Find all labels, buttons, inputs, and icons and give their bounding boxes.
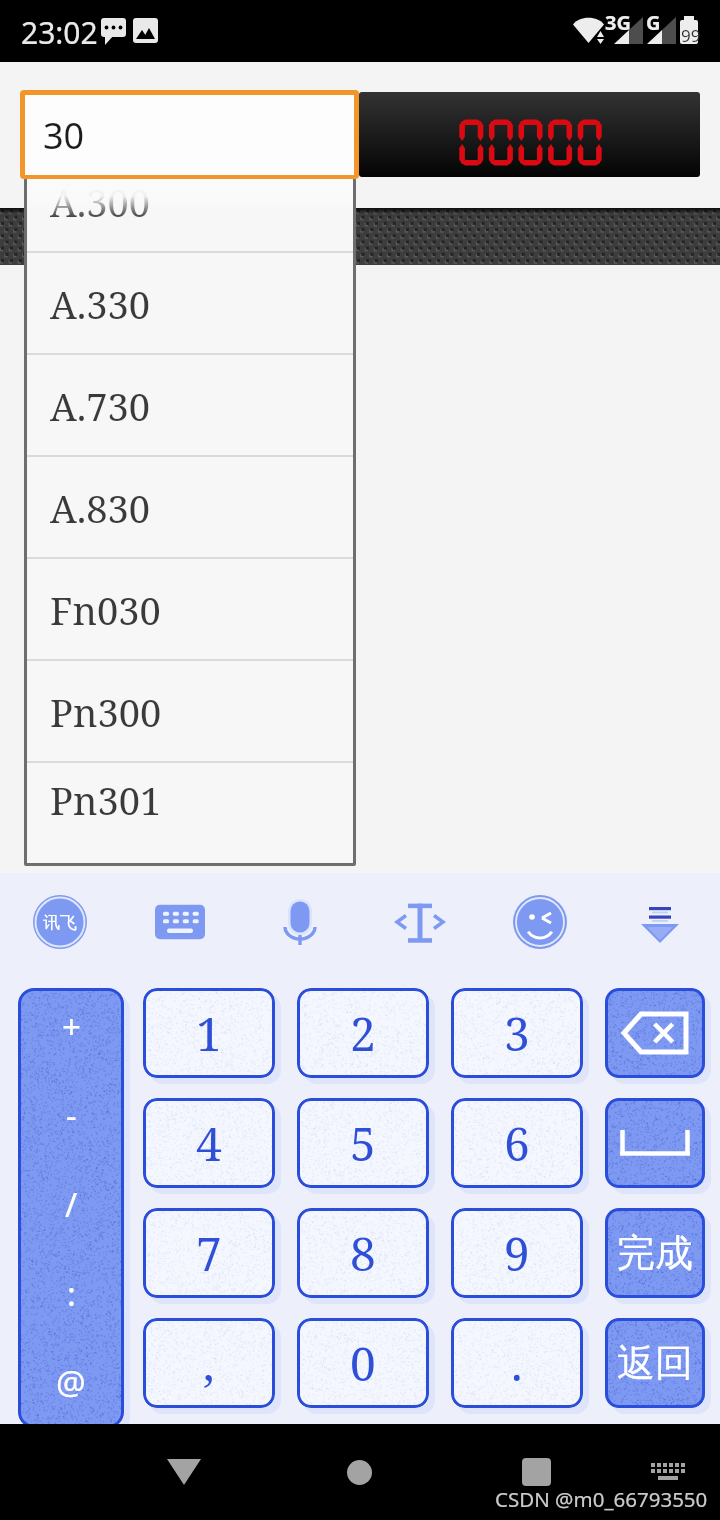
button[interactable]: 9	[451, 1208, 583, 1298]
staticText: Fn030	[50, 584, 161, 636]
button[interactable]: Pn301	[27, 763, 353, 836]
staticText: 完成	[617, 1229, 693, 1277]
staticText: /	[65, 1182, 78, 1227]
button[interactable]: 4	[143, 1098, 275, 1188]
staticText: 返回	[617, 1339, 693, 1387]
button[interactable]: Back	[144, 1438, 224, 1506]
button[interactable]: Pn300	[27, 661, 353, 763]
staticText: 1	[196, 1002, 222, 1065]
button[interactable]: Switch keyboard	[636, 1438, 700, 1506]
staticText: A.830	[50, 482, 151, 534]
button[interactable]: 返回	[605, 1318, 705, 1408]
button[interactable]: Input method	[16, 884, 104, 960]
button[interactable]: A.730	[27, 355, 353, 457]
button[interactable]: +	[18, 988, 124, 1428]
staticText: .	[511, 1332, 523, 1395]
staticText: 4	[196, 1112, 222, 1175]
button[interactable]: 7	[143, 1208, 275, 1298]
button[interactable]: 0	[297, 1318, 429, 1408]
button[interactable]: ,	[143, 1318, 275, 1408]
button[interactable]: A.300	[27, 178, 353, 253]
staticText: 5	[350, 1112, 376, 1175]
staticText: -	[66, 1093, 77, 1138]
staticText: Pn301	[50, 774, 162, 826]
staticText: ,	[203, 1332, 215, 1395]
button[interactable]: 8	[297, 1208, 429, 1298]
button[interactable]: Home	[319, 1438, 399, 1506]
button[interactable]: Emoji	[496, 884, 584, 960]
staticText: 99	[681, 24, 701, 47]
staticText: 23:02	[21, 12, 98, 53]
button[interactable]: Voice input	[256, 884, 344, 960]
staticText: 30	[43, 111, 85, 160]
button[interactable]: A.330	[27, 253, 353, 355]
button[interactable]: 30	[25, 95, 354, 175]
staticText: CSDN @m0_66793550	[495, 1485, 708, 1513]
staticText: A.730	[50, 380, 151, 432]
button[interactable]: Recents	[496, 1438, 576, 1506]
staticText: 讯飞	[43, 912, 77, 933]
other: Space	[620, 1130, 690, 1156]
button[interactable]: 完成	[605, 1208, 705, 1298]
staticText: 0	[350, 1332, 376, 1395]
button[interactable]: 1	[143, 988, 275, 1078]
staticText: 2	[350, 1002, 376, 1065]
staticText: 8	[350, 1222, 376, 1285]
button[interactable]: Move cursor	[376, 884, 464, 960]
button[interactable]: 5	[297, 1098, 429, 1188]
button[interactable]: 6	[451, 1098, 583, 1188]
staticText: 6	[504, 1112, 530, 1175]
other: Backspace	[619, 1009, 691, 1057]
staticText: @	[56, 1360, 86, 1405]
staticText: A.330	[50, 278, 151, 330]
button[interactable]: Space	[605, 1098, 705, 1188]
button[interactable]: Backspace	[605, 988, 705, 1078]
button[interactable]: A.830	[27, 457, 353, 559]
staticText: Pn300	[50, 686, 162, 738]
staticText: +	[62, 1004, 81, 1049]
button[interactable]: Fn030	[27, 559, 353, 661]
staticText: 3G	[605, 9, 631, 36]
button[interactable]: 3	[451, 988, 583, 1078]
staticText: :	[67, 1271, 76, 1316]
staticText: A.300	[50, 178, 151, 228]
staticText: 3	[504, 1002, 530, 1065]
staticText: G	[646, 9, 661, 36]
button[interactable]: Keyboard layout	[136, 884, 224, 960]
button[interactable]: .	[451, 1318, 583, 1408]
staticText: 7	[196, 1222, 222, 1285]
staticText: 9	[504, 1222, 530, 1285]
button[interactable]: Hide keyboard	[616, 884, 704, 960]
button[interactable]: 2	[297, 988, 429, 1078]
